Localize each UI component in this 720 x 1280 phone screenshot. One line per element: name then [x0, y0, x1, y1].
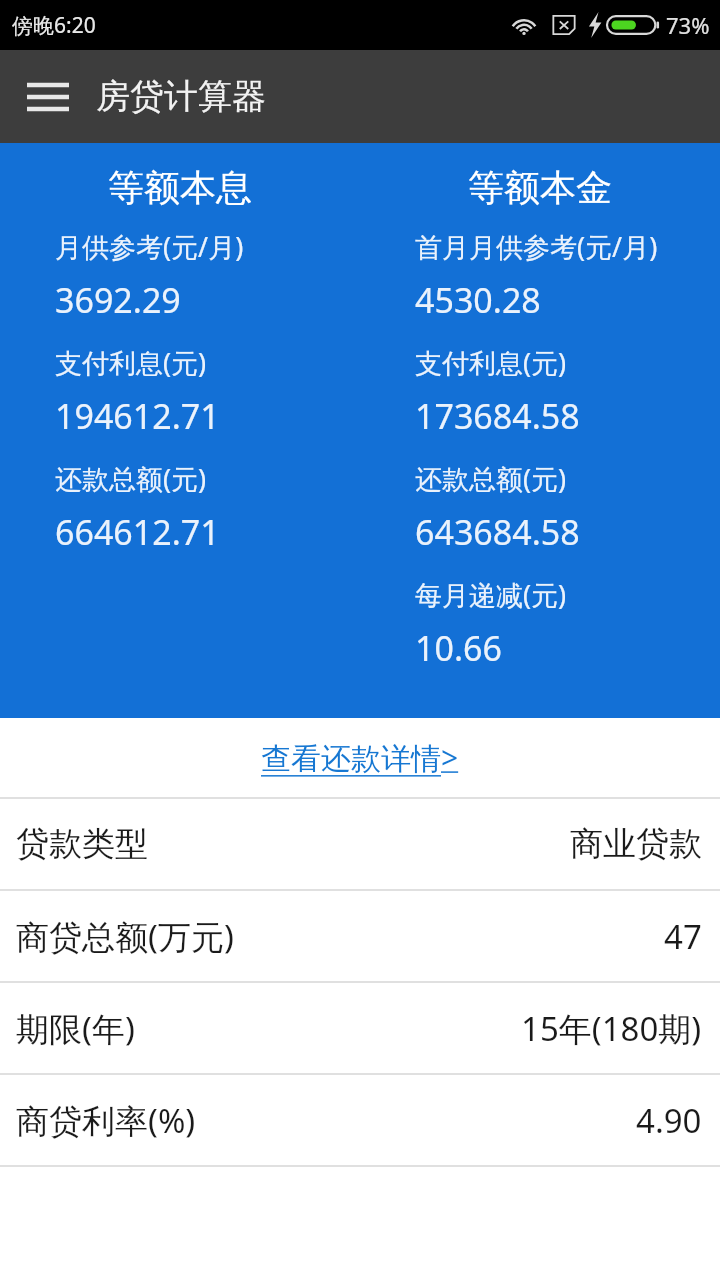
staticText: 商贷总额(万元)	[16, 914, 234, 959]
staticText: 房贷计算器	[96, 75, 266, 118]
staticText: 商业贷款	[570, 823, 702, 865]
staticText: 73%	[666, 10, 710, 40]
button[interactable]: 商贷利率(%)	[0, 1075, 720, 1165]
staticText: 商贷利率(%)	[16, 1098, 196, 1143]
button[interactable]: 期限(年)	[0, 983, 720, 1073]
staticText: 查看还款详情>	[261, 737, 459, 778]
staticText: 每月递减(元)	[415, 576, 720, 613]
button[interactable]: Menu	[22, 71, 74, 123]
staticText: 等额本金	[360, 165, 720, 210]
staticText: 支付利息(元)	[55, 344, 360, 381]
staticText: 47	[664, 914, 702, 959]
staticText: 期限(年)	[16, 1006, 135, 1051]
staticText: 支付利息(元)	[415, 344, 720, 381]
button[interactable]: 商贷总额(万元)	[0, 891, 720, 981]
staticText: 等额本息	[0, 165, 360, 210]
staticText: 643684.58	[415, 509, 720, 555]
staticText: 首月月供参考(元/月)	[415, 228, 720, 265]
staticText: 194612.71	[55, 393, 360, 439]
staticText: 傍晚6:20	[12, 11, 96, 40]
staticText: 还款总额(元)	[55, 460, 360, 497]
staticText: 173684.58	[415, 393, 720, 439]
button[interactable]: 查看还款详情>	[0, 718, 720, 797]
staticText: 贷款类型	[16, 823, 148, 865]
staticText: 月供参考(元/月)	[55, 228, 360, 265]
staticText: 10.66	[415, 625, 720, 671]
button[interactable]: 贷款类型	[0, 799, 720, 889]
staticText: 664612.71	[55, 509, 360, 555]
staticText: 还款总额(元)	[415, 460, 720, 497]
staticText: 4.90	[636, 1098, 702, 1143]
staticText: 15年(180期)	[521, 1006, 702, 1051]
staticText: 3692.29	[55, 277, 360, 323]
staticText: 4530.28	[415, 277, 720, 323]
